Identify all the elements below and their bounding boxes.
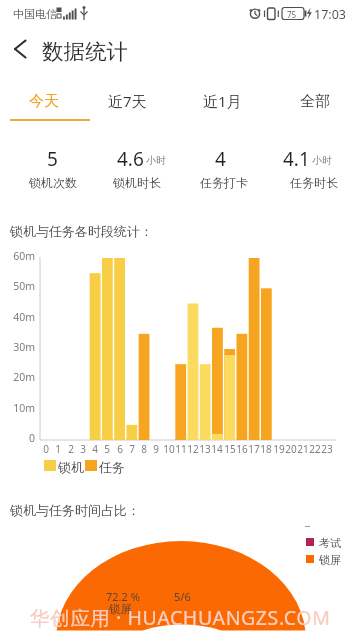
staticText: 14 xyxy=(208,442,226,456)
staticText: 任务打卡 xyxy=(179,175,269,190)
staticText: 锁屏 xyxy=(109,602,132,616)
button[interactable]: 数据统计 xyxy=(0,28,360,76)
staticText: 10 xyxy=(160,442,178,456)
staticText: 锁机与任务各时段统计： xyxy=(10,223,153,239)
staticText: 1 xyxy=(49,442,67,456)
button[interactable]: 近7天 xyxy=(87,85,167,117)
staticText: 考试 xyxy=(319,536,341,550)
staticText: 2 xyxy=(62,442,80,456)
staticText: 4.6 xyxy=(117,146,144,166)
staticText: 4 xyxy=(86,442,104,456)
staticText: 23 xyxy=(318,442,336,456)
staticText: 15 xyxy=(221,442,239,456)
staticText: 锁机次数 xyxy=(8,175,98,190)
staticText: 3 xyxy=(74,442,92,456)
staticText: 数据统计 xyxy=(42,38,128,65)
staticText: 0 xyxy=(37,442,55,456)
staticText: 全部 xyxy=(300,92,330,111)
staticText: 8 xyxy=(135,442,153,456)
staticText: 12 xyxy=(184,442,202,456)
staticText: 4.1 xyxy=(283,146,310,166)
staticText: 华创应用 · HUACHUANGZS.COM xyxy=(30,604,331,631)
staticText: 5/6 xyxy=(174,589,191,604)
staticText: 20 xyxy=(282,442,300,456)
staticText: 13 xyxy=(196,442,214,456)
staticText: 19 xyxy=(270,442,288,456)
staticText: 20m xyxy=(0,370,35,384)
staticText: 17:03 xyxy=(314,6,346,23)
staticText: 30m xyxy=(0,340,35,354)
staticText: 22 xyxy=(306,442,324,456)
button[interactable]: 近1月 xyxy=(182,85,262,117)
staticText: 任务 xyxy=(99,459,125,475)
staticText: 任务时长 xyxy=(269,175,359,190)
staticText: 60m xyxy=(0,249,35,263)
staticText: 近1月 xyxy=(203,91,242,111)
staticText: 今天 xyxy=(29,92,59,111)
staticText: 21 xyxy=(294,442,312,456)
staticText: 小时 xyxy=(146,154,166,167)
staticText: 16 xyxy=(233,442,251,456)
staticText: 小时 xyxy=(312,154,332,167)
staticText: 锁机时长 xyxy=(92,175,182,190)
staticText: 6 xyxy=(111,442,129,456)
staticText: 72.2 % xyxy=(106,589,140,604)
staticText: 近7天 xyxy=(108,91,147,111)
staticText: 40m xyxy=(0,310,35,324)
staticText: 锁机 xyxy=(58,459,84,475)
staticText: 11 xyxy=(172,442,190,456)
staticText: 75 xyxy=(287,9,297,20)
button[interactable]: 今天 xyxy=(4,85,84,117)
staticText: 5 xyxy=(47,146,58,166)
staticText: 7 xyxy=(123,442,141,456)
staticText: 5 xyxy=(98,442,116,456)
staticText: 4 xyxy=(215,146,226,166)
staticText: 9 xyxy=(147,442,165,456)
staticText: 中国电信 xyxy=(13,7,57,21)
button[interactable]: 全部 xyxy=(275,85,355,117)
staticText: 锁机与任务时间占比： xyxy=(10,502,140,518)
staticText: 50m xyxy=(0,279,35,293)
staticText: 18 xyxy=(257,442,275,456)
staticText: 17 xyxy=(245,442,263,456)
staticText: 0 xyxy=(0,431,35,445)
staticText: 10m xyxy=(0,401,35,415)
staticText: 锁屏 xyxy=(319,553,341,567)
